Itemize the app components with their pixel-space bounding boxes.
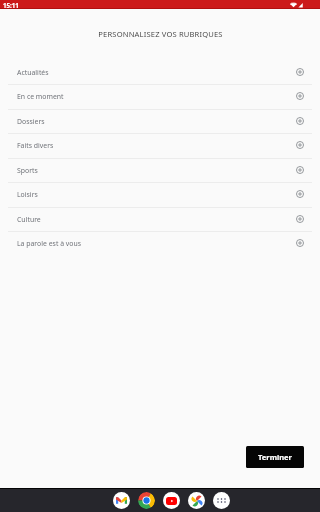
button[interactable]: La parole est à vous	[0, 231, 320, 255]
staticText: Terminer	[258, 452, 292, 462]
button[interactable]: App drawer	[213, 492, 230, 509]
button[interactable]: En ce moment	[0, 84, 320, 108]
button[interactable]: Sports	[0, 158, 320, 182]
staticText: 15:11	[3, 1, 19, 9]
button[interactable]: Actualités	[0, 60, 320, 84]
button[interactable]: Dossiers	[0, 109, 320, 133]
button[interactable]: Culture	[0, 207, 320, 231]
button[interactable]: Chrome	[138, 492, 155, 509]
staticText: Faits divers	[17, 141, 54, 150]
button[interactable]: Gmail	[113, 492, 130, 509]
staticText: Loisirs	[17, 190, 38, 199]
staticText: En ce moment	[17, 92, 64, 101]
staticText: Dossiers	[17, 117, 45, 126]
staticText: Culture	[17, 215, 41, 224]
button[interactable]: Faits divers	[0, 133, 320, 157]
staticText: La parole est à vous	[17, 239, 82, 248]
button[interactable]: Loisirs	[0, 182, 320, 206]
button[interactable]: Photos	[188, 492, 205, 509]
staticText: Actualités	[17, 68, 49, 77]
staticText: PERSONNALISEZ VOS RUBRIQUES	[98, 29, 223, 38]
button[interactable]: Terminer	[246, 446, 304, 468]
staticText: Sports	[17, 166, 38, 175]
button[interactable]: YouTube	[163, 492, 180, 509]
